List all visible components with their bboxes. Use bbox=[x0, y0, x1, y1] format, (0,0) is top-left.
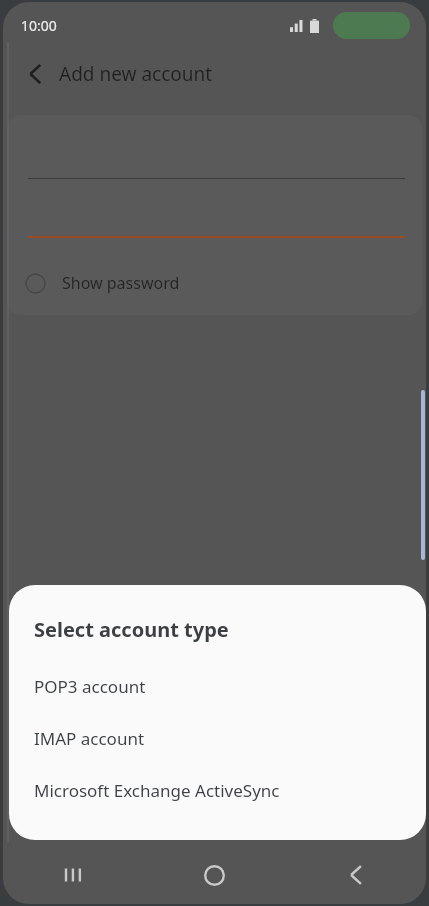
staticText: 10:00 bbox=[21, 16, 57, 35]
button[interactable]: POP3 account bbox=[9, 660, 426, 712]
button[interactable]: Recent apps bbox=[3, 846, 144, 904]
button[interactable]: Show password bbox=[25, 260, 180, 306]
button[interactable]: Microsoft Exchange ActiveSync bbox=[9, 764, 426, 816]
staticText: Microsoft Exchange ActiveSync bbox=[34, 779, 280, 802]
button[interactable]: IMAP account bbox=[9, 712, 426, 764]
staticText: IMAP account bbox=[34, 727, 145, 750]
staticText: Select account type bbox=[34, 616, 229, 643]
staticText: Add new account bbox=[59, 61, 213, 87]
button[interactable]: Back bbox=[17, 56, 53, 92]
button[interactable]: Back bbox=[285, 846, 426, 904]
button[interactable]: Home bbox=[144, 846, 285, 904]
staticText: Show password bbox=[62, 272, 180, 294]
staticText: POP3 account bbox=[34, 675, 146, 698]
